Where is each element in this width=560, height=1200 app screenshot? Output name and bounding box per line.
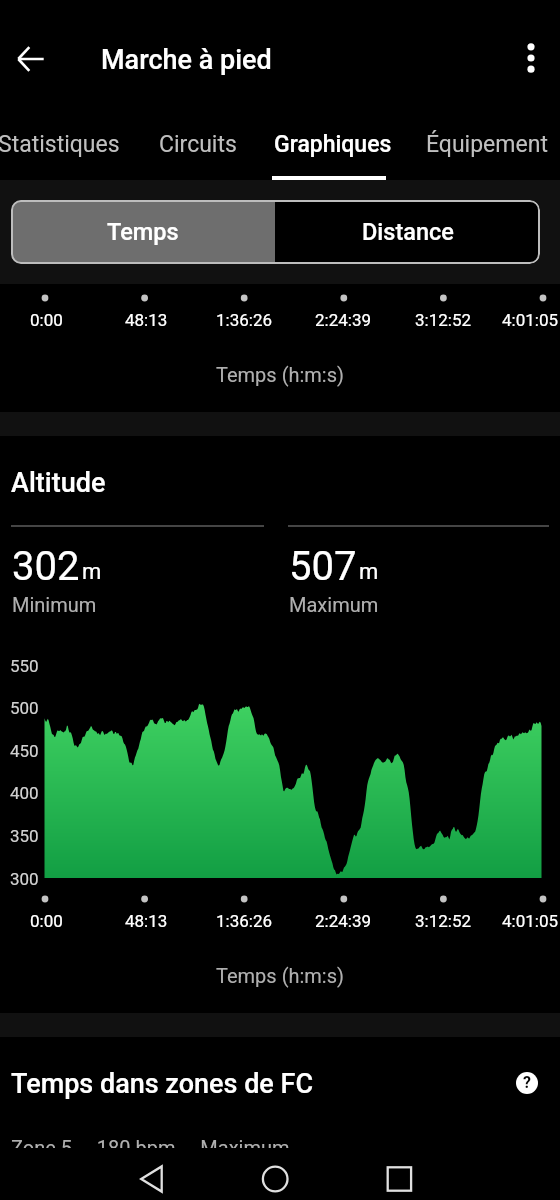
staticText: Maximum: [289, 593, 379, 616]
button[interactable]: More options: [500, 27, 560, 89]
staticText: Minimum: [12, 593, 97, 616]
staticText: 450: [10, 741, 39, 761]
button[interactable]: Circuits: [159, 113, 237, 180]
staticText: ?: [523, 1073, 531, 1092]
staticText: 302: [12, 543, 80, 590]
button[interactable]: Temps: [11, 200, 275, 264]
staticText: 4:01:05: [502, 911, 559, 931]
button[interactable]: Help: [507, 1063, 547, 1103]
staticText: 4:01:05: [502, 310, 559, 330]
staticText: m: [82, 559, 102, 585]
staticText: Temps (h:m:s): [216, 964, 344, 987]
staticText: 500: [10, 698, 39, 718]
staticText: 3:12:52: [415, 911, 472, 931]
staticText: 550: [10, 656, 39, 676]
staticText: 0:00: [30, 310, 63, 330]
button[interactable]: Statistiques: [0, 113, 120, 180]
staticText: 2:24:39: [315, 310, 372, 330]
button[interactable]: Back: [120, 1148, 182, 1200]
staticText: 48:13: [125, 911, 168, 931]
staticText: 3:12:52: [415, 310, 472, 330]
button[interactable]: Recent apps: [369, 1148, 431, 1200]
staticText: m: [359, 559, 379, 585]
staticText: 1:36:26: [216, 310, 273, 330]
staticText: Statistiques: [0, 131, 120, 158]
staticText: 350: [10, 826, 39, 846]
staticText: 48:13: [125, 310, 168, 330]
staticText: Circuits: [159, 131, 237, 158]
staticText: Temps (h:m:s): [216, 363, 344, 386]
button[interactable]: Graphiques: [274, 113, 392, 180]
button[interactable]: Home: [245, 1148, 307, 1200]
button[interactable]: Distance: [275, 200, 540, 264]
staticText: 507: [289, 543, 357, 590]
staticText: Temps: [107, 218, 179, 246]
button[interactable]: Back: [0, 28, 62, 90]
button[interactable]: Équipement: [426, 113, 548, 180]
staticText: Altitude: [11, 467, 106, 499]
staticText: Marche à pied: [101, 44, 272, 76]
staticText: 400: [10, 783, 39, 803]
staticText: Temps dans zones de FC: [11, 1068, 314, 1100]
staticText: 1:36:26: [216, 911, 273, 931]
staticText: Équipement: [426, 131, 548, 158]
staticText: Zone 5 180 bpm Maximum: [11, 1136, 290, 1159]
staticText: Distance: [362, 218, 454, 246]
staticText: 0:00: [30, 911, 63, 931]
staticText: 2:24:39: [315, 911, 372, 931]
staticText: Graphiques: [274, 131, 392, 158]
staticText: 300: [10, 869, 39, 889]
